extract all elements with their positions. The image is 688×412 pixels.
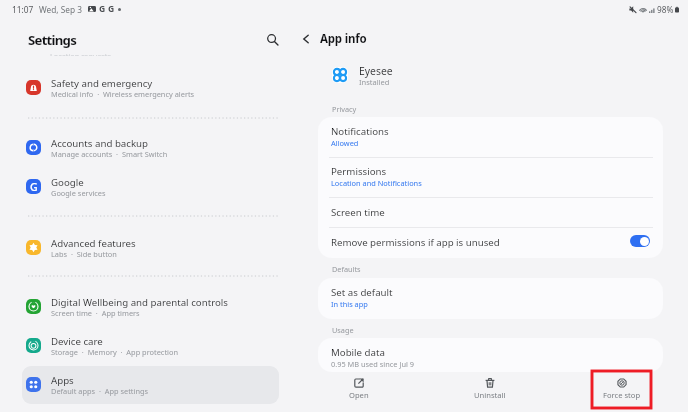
staticText: Permissions (331, 165, 387, 178)
staticText: Location requests (50, 54, 111, 56)
staticText: Location and Notifications (331, 178, 422, 188)
staticText: Settings (28, 31, 77, 49)
staticText: Defaults (332, 264, 361, 274)
button[interactable]: Search (261, 28, 284, 51)
button[interactable]: Permissions (318, 157, 663, 198)
button[interactable]: Remove permissions if app is unused (318, 227, 663, 255)
staticText: 0.95 MB used since Jul 9 (331, 359, 415, 369)
staticText: G (99, 3, 106, 15)
staticText: Wed, Sep 3 (39, 4, 82, 15)
staticText: Manage accounts · Smart Switch (51, 149, 168, 159)
staticText: Accounts and backup (51, 137, 149, 150)
staticText: Default apps · App settings (51, 386, 149, 396)
button[interactable]: Device care (22, 325, 279, 365)
staticText: Eyesee (359, 64, 393, 78)
staticText: Google services (51, 188, 106, 198)
button[interactable]: Accounts and backup (22, 127, 279, 167)
staticText: Storage · Memory · App protection (51, 347, 179, 357)
staticText: Labs · Side button (51, 249, 117, 259)
staticText: Device care (51, 335, 103, 348)
button[interactable]: Apps (22, 364, 279, 404)
staticText: Advanced features (51, 237, 136, 250)
staticText: Screen time · App timers (51, 308, 140, 318)
staticText: Installed (359, 77, 390, 87)
staticText: Privacy (332, 104, 357, 114)
button[interactable]: Force stop (594, 373, 650, 412)
staticText: Apps (51, 374, 74, 387)
staticText: Set as default (331, 286, 393, 299)
button[interactable]: Mobile data (318, 338, 663, 372)
staticText: Uninstall (474, 390, 506, 400)
staticText: Medical info · Wireless emergency alerts (51, 89, 195, 99)
button[interactable]: Uninstall (462, 373, 518, 412)
staticText: 11:07 (12, 4, 34, 15)
staticText: G (30, 180, 38, 194)
button[interactable]: Set as default (318, 278, 663, 319)
button[interactable]: Advanced features (22, 227, 279, 267)
staticText: Force stop (603, 390, 641, 400)
staticText: Open (349, 390, 369, 400)
staticText: Safety and emergency (51, 77, 153, 90)
button[interactable]: Notifications (318, 117, 663, 158)
staticText: G (108, 3, 115, 15)
staticText: Digital Wellbeing and parental controls (51, 296, 228, 309)
staticText: Mobile data (331, 346, 385, 359)
button[interactable]: G (22, 166, 279, 206)
staticText: 98% (657, 4, 674, 15)
button[interactable]: Back (295, 28, 317, 50)
staticText: Allowed (331, 138, 359, 148)
button[interactable]: Toggle (630, 235, 650, 247)
button[interactable]: Digital Wellbeing and parental controls (22, 286, 279, 326)
staticText: Usage (332, 325, 354, 335)
staticText: Remove permissions if app is unused (331, 236, 500, 249)
staticText: In this app (331, 299, 368, 309)
staticText: App info (320, 31, 367, 47)
button[interactable]: Open (331, 373, 387, 412)
button[interactable]: Safety and emergency (22, 67, 279, 107)
staticText: Screen time (331, 206, 385, 219)
staticText: Notifications (331, 125, 389, 138)
button[interactable]: Screen time (318, 197, 663, 225)
staticText: Google (51, 176, 84, 189)
